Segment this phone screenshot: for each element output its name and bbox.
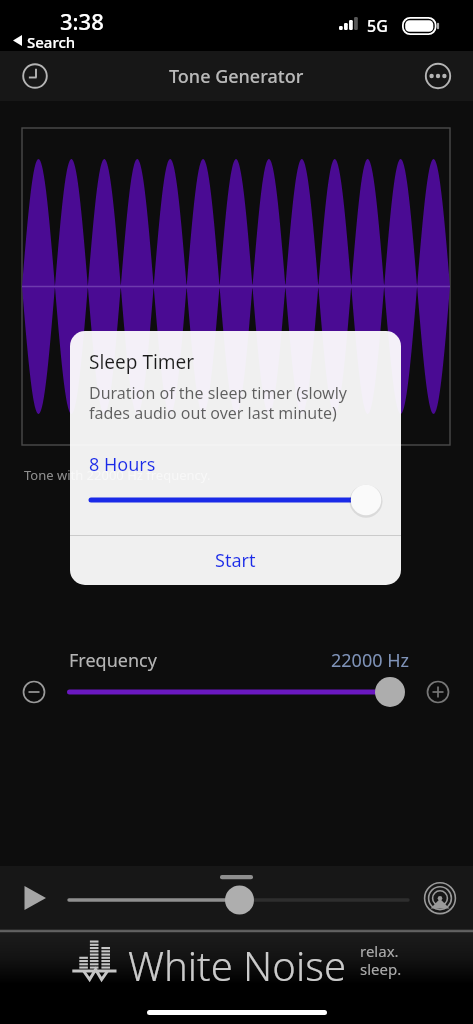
button[interactable]: AirPlay [421, 878, 459, 916]
staticText: White Noise [128, 938, 346, 992]
staticText: relax. [360, 941, 399, 961]
staticText: 5G [367, 15, 388, 37]
staticText: 8 Hours [89, 452, 156, 477]
button[interactable]: Play [14, 877, 56, 919]
staticText: Search [27, 32, 76, 52]
staticText: Duration of the sleep timer (slowly fade… [89, 382, 373, 423]
button[interactable]: Start [70, 536, 401, 585]
staticText: 3:38 [60, 6, 104, 36]
button[interactable]: More options [416, 54, 460, 98]
staticText: 22000 Hz [331, 648, 409, 673]
staticText: Sleep Timer [89, 349, 195, 375]
staticText: Tone with 22000 Hz frequency. [24, 466, 211, 484]
staticText: Tone Generator [169, 64, 304, 89]
staticText: sleep. [360, 959, 402, 979]
button[interactable]: Sleep timer [13, 54, 57, 98]
staticText: Start [215, 548, 256, 573]
staticText: Frequency [69, 648, 157, 673]
button[interactable]: Increase frequency [416, 670, 460, 714]
button[interactable]: Decrease frequency [12, 670, 56, 714]
